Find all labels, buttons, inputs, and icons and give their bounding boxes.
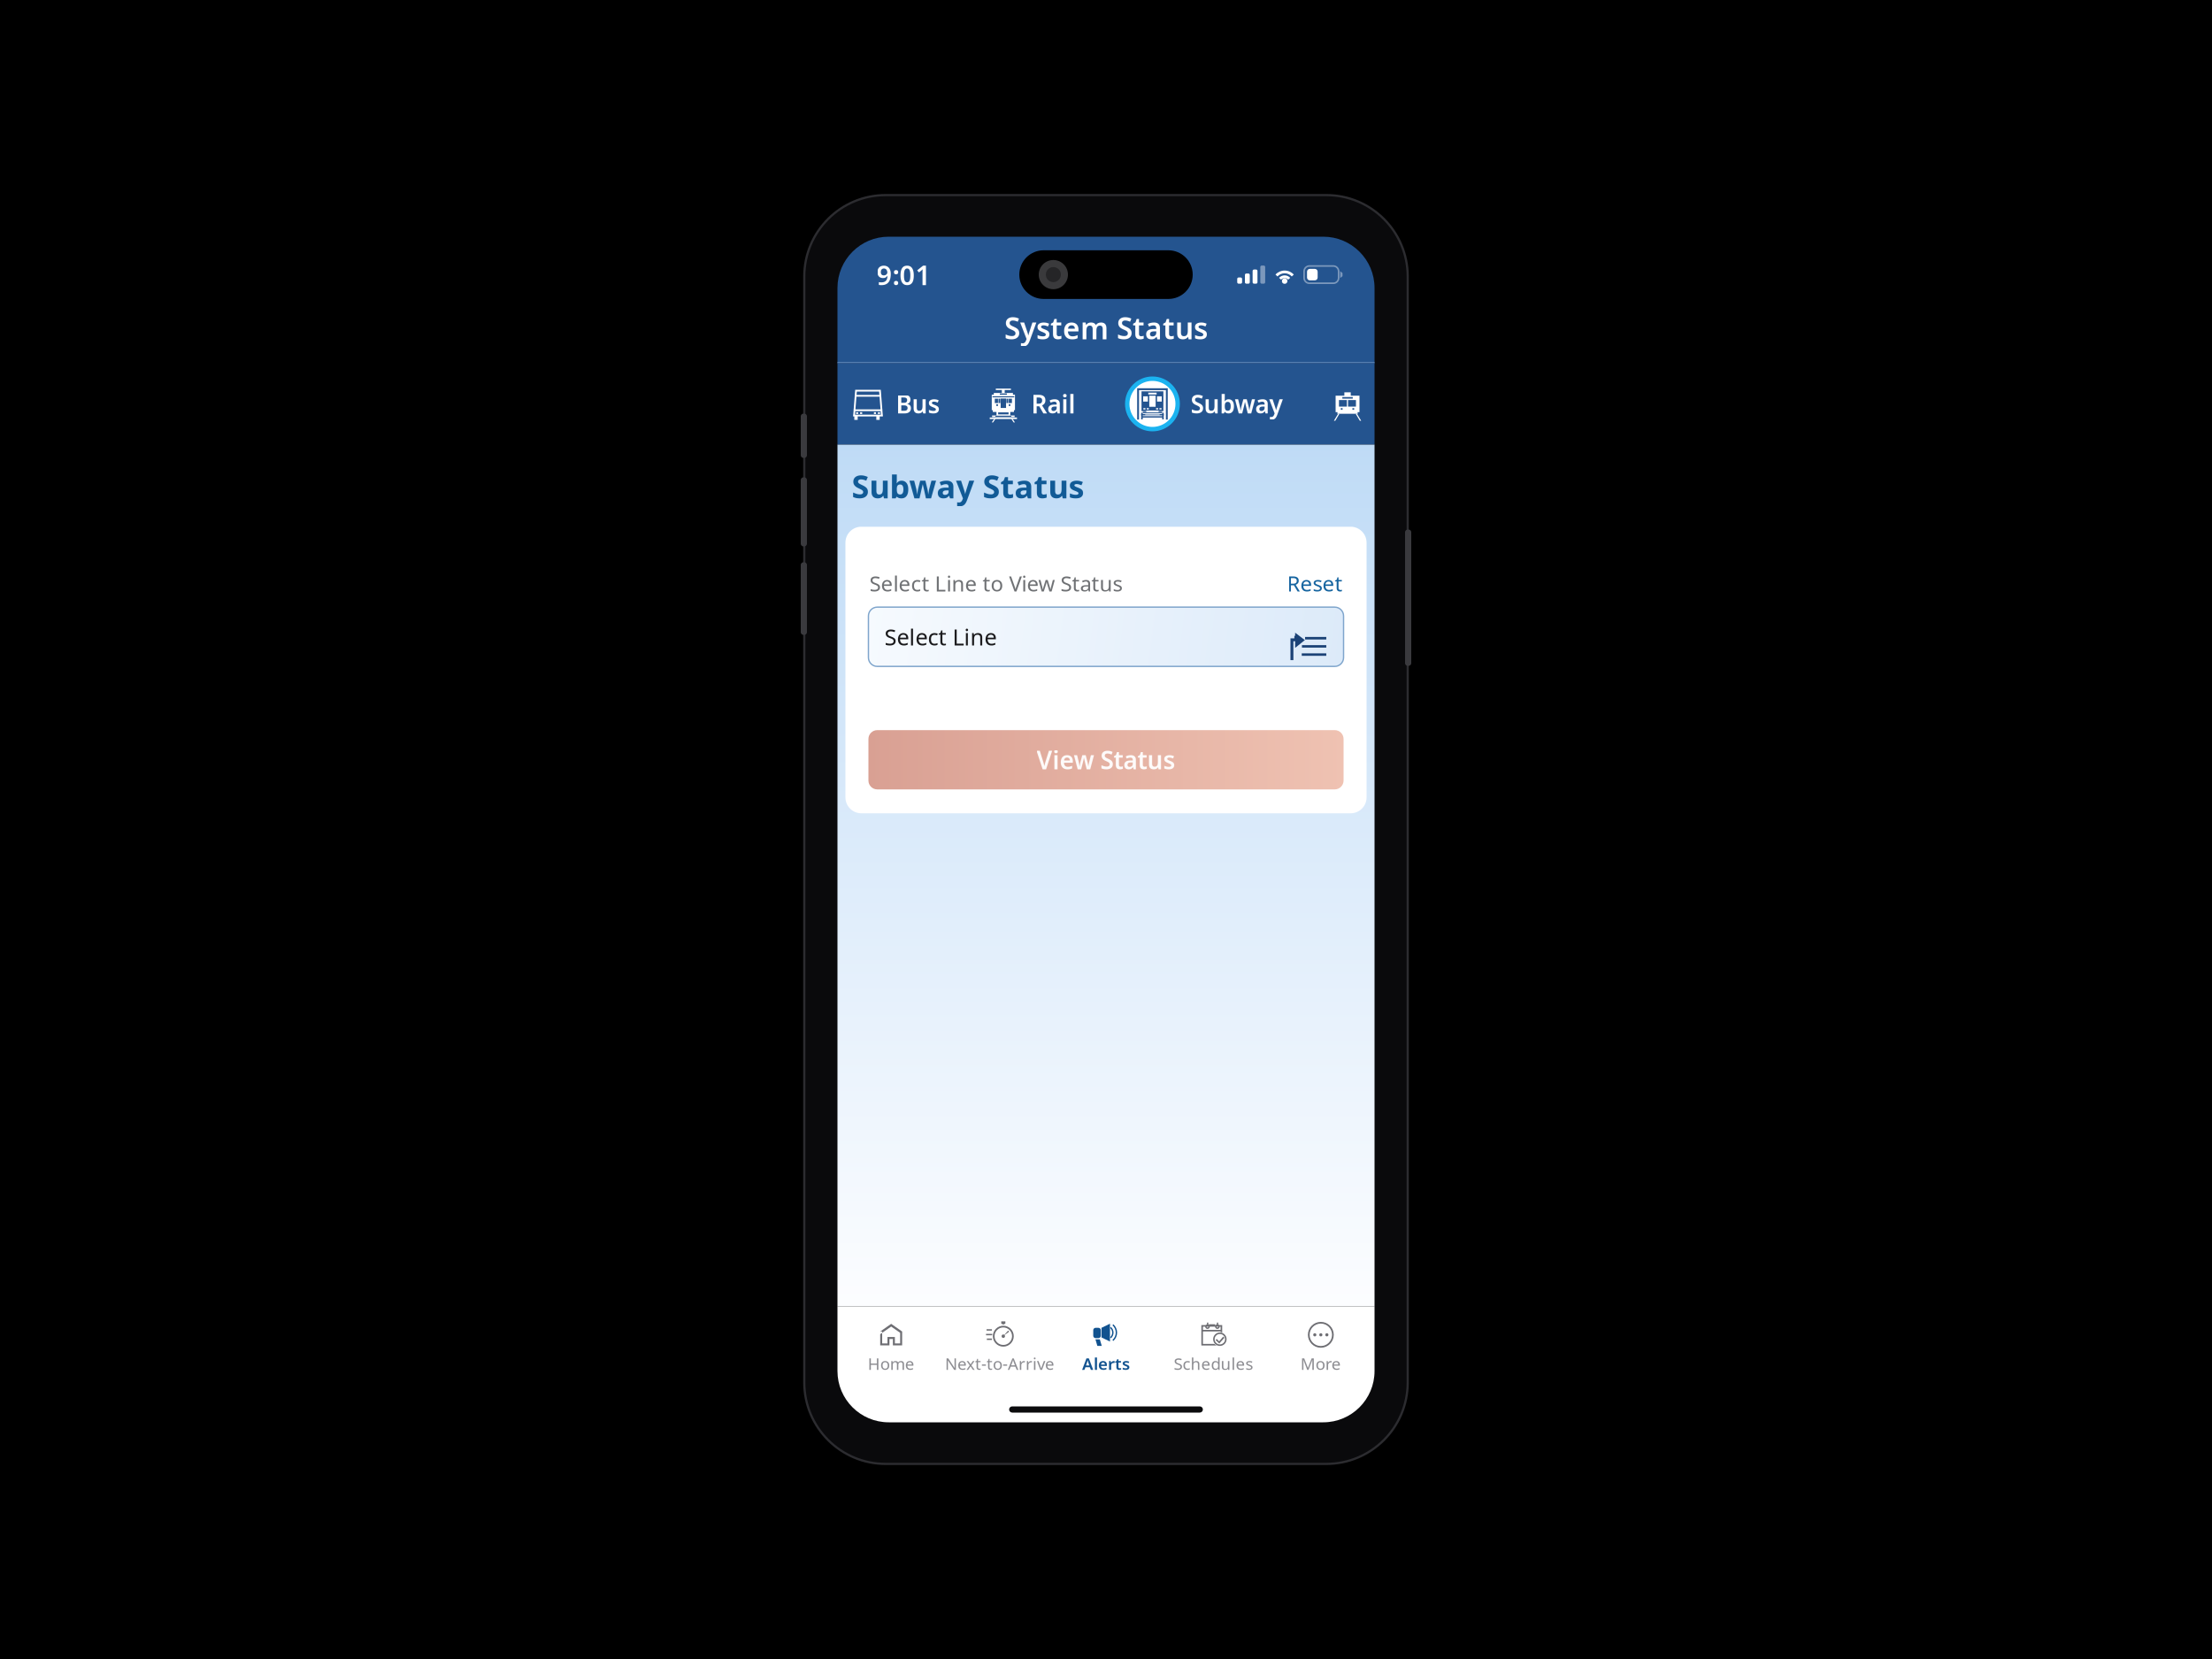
- staticText: NHSL: [1375, 387, 1440, 420]
- button[interactable]: Rail: [987, 376, 1075, 431]
- staticText: Subway: [1190, 387, 1283, 420]
- staticText: 9:01: [876, 257, 931, 293]
- staticText: Rail: [1031, 387, 1075, 420]
- staticText: Alerts: [1082, 1353, 1130, 1374]
- button[interactable]: Bus: [852, 376, 940, 431]
- button[interactable]: Select Line: [845, 607, 1367, 666]
- staticText: View Status: [1037, 743, 1175, 776]
- staticText: Schedules: [1174, 1353, 1253, 1374]
- button[interactable]: Norristown High Speed Line: [1331, 376, 1440, 431]
- staticText: Subway Status: [852, 465, 1084, 507]
- button[interactable]: Reset: [1287, 569, 1343, 597]
- staticText: More: [1300, 1353, 1341, 1374]
- button[interactable]: More: [1267, 1311, 1375, 1380]
- staticText: Reset: [1287, 569, 1343, 597]
- staticText: System Status: [1004, 308, 1208, 347]
- staticText: Select Line: [884, 622, 997, 652]
- button[interactable]: Subway: [1125, 376, 1283, 431]
- staticText: Home: [868, 1353, 915, 1374]
- staticText: Select Line to View Status: [869, 569, 1122, 597]
- button[interactable]: Alerts: [1052, 1311, 1160, 1380]
- button[interactable]: Next-to-Arrive: [945, 1311, 1052, 1380]
- button[interactable]: Schedules: [1160, 1311, 1267, 1380]
- button[interactable]: View Status: [845, 730, 1367, 789]
- button[interactable]: Home: [837, 1311, 945, 1380]
- staticText: Bus: [896, 387, 940, 420]
- staticText: Next-to-Arrive: [945, 1353, 1055, 1374]
